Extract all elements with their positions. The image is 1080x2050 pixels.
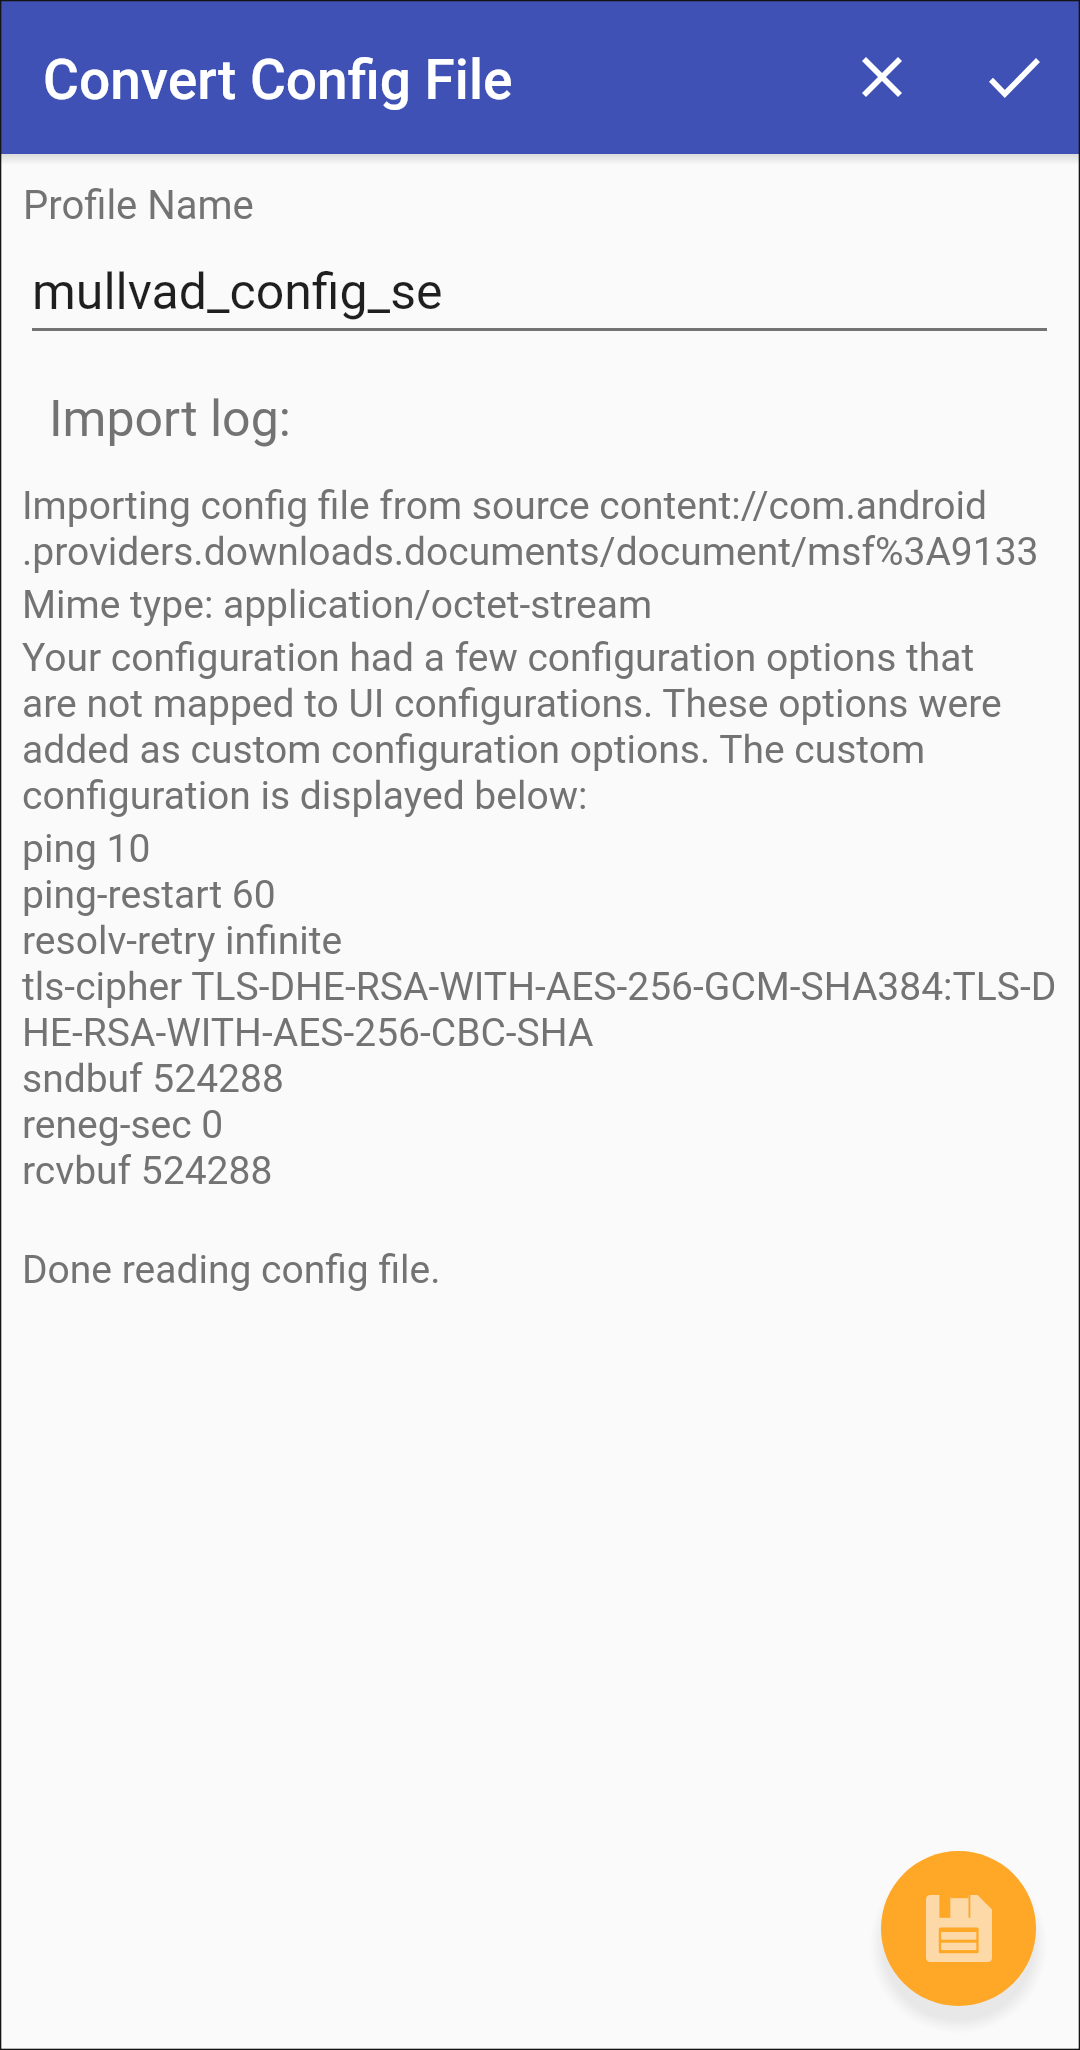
staticText: Profile Name [23, 182, 254, 229]
staticText: Mime type: application/octet-stream [22, 582, 653, 628]
staticText: Done reading config file. [22, 1247, 441, 1293]
button[interactable]: Confirm [948, 11, 1080, 143]
staticText: Your configuration had a few configurati… [22, 635, 1002, 819]
button[interactable]: Cancel [816, 11, 948, 143]
staticText: mullvad_config_se [32, 263, 443, 322]
button[interactable]: Save profile [881, 1851, 1036, 2006]
staticText: Import log: [49, 390, 291, 449]
staticText: Importing config file from source conten… [22, 483, 1039, 575]
staticText: ping 10 ping-restart 60 resolv-retry inf… [22, 826, 1057, 1240]
staticText: Convert Config File [43, 48, 513, 112]
